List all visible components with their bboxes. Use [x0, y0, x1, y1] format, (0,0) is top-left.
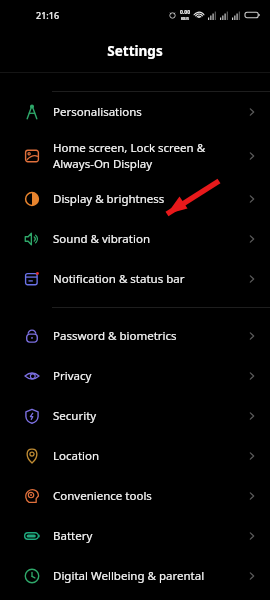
button[interactable]: Notification & status bar [0, 259, 270, 299]
button[interactable]: Battery [0, 516, 270, 556]
button[interactable]: Personalisations [0, 92, 270, 132]
button[interactable]: Convenience tools [0, 476, 270, 516]
staticText: Sound & vibration [53, 231, 246, 247]
staticText: Notification & status bar [53, 271, 246, 287]
button[interactable]: Password & biometrics [0, 316, 270, 356]
staticText: Display & brightness [53, 191, 246, 207]
button[interactable]: Location [0, 436, 270, 476]
staticText: Location [53, 448, 246, 464]
button[interactable]: Privacy [0, 356, 270, 396]
button[interactable]: Display & brightness [0, 179, 270, 219]
staticText: Privacy [53, 368, 246, 384]
button[interactable]: Digital Wellbeing & parental [0, 556, 270, 596]
staticText: Digital Wellbeing & parental [53, 568, 246, 584]
staticText: Settings [107, 42, 163, 60]
staticText: 0.00 [180, 9, 190, 16]
staticText: Home screen, Lock screen & Always-On Dis… [53, 140, 246, 171]
staticText: KB/S [181, 16, 190, 21]
staticText: Personalisations [53, 104, 246, 120]
button[interactable]: Home screen, Lock screen & Always-On Dis… [0, 132, 270, 179]
staticText: 21:16 [36, 9, 60, 21]
button[interactable]: Security [0, 396, 270, 436]
staticText: Battery [53, 528, 246, 544]
button[interactable]: Sound & vibration [0, 219, 270, 259]
staticText: Security [53, 408, 246, 424]
staticText: Password & biometrics [53, 328, 246, 344]
staticText: Convenience tools [53, 488, 246, 504]
